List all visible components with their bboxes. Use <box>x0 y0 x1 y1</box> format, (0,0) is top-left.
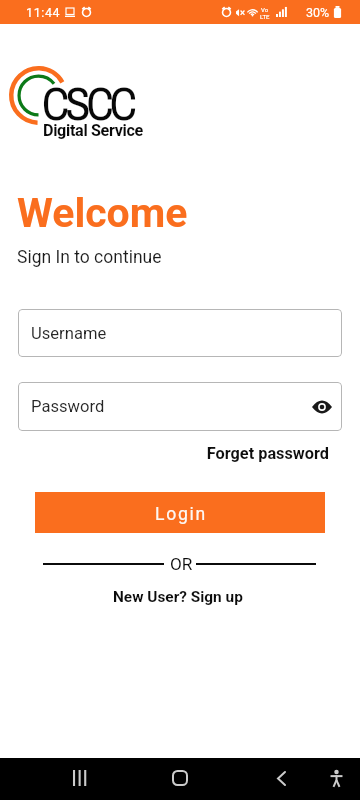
staticText: Sign In to continue <box>17 247 162 268</box>
staticText: Login <box>155 504 207 525</box>
button[interactable]: Back <box>261 758 301 798</box>
staticText: 30% <box>306 5 330 20</box>
button[interactable]: Home <box>160 758 200 798</box>
staticText: Password <box>31 397 105 416</box>
staticText: CSCC <box>42 72 133 134</box>
staticText: 11:44 <box>26 5 61 20</box>
staticText: OR <box>170 554 193 574</box>
staticText: Welcome <box>17 189 188 237</box>
staticText: LTE <box>260 13 270 20</box>
button[interactable]: Forget password <box>0 444 329 463</box>
button[interactable]: Username <box>18 309 342 357</box>
staticText: Username <box>31 324 107 343</box>
button[interactable]: Accessibility <box>316 758 356 798</box>
button[interactable]: Recents <box>59 758 99 798</box>
button[interactable]: Password <box>18 382 342 431</box>
staticText: Vo <box>261 6 269 13</box>
staticText: Digital Service <box>43 121 143 140</box>
button[interactable]: Show password <box>309 394 335 420</box>
button[interactable]: Login <box>35 492 325 533</box>
button[interactable]: New User? Sign up <box>113 588 243 606</box>
